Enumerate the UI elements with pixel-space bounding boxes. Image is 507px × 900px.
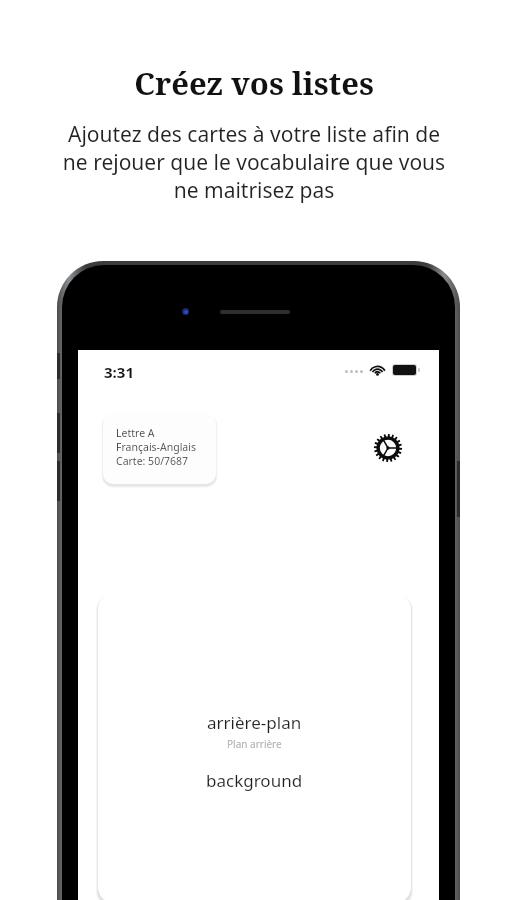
staticText: Ajoutez des cartes à votre liste afin de… xyxy=(54,120,454,204)
staticText: Plan arrière xyxy=(227,737,282,751)
button[interactable]: Lettre A xyxy=(103,413,216,484)
staticText: Créez vos listes xyxy=(134,62,374,104)
button[interactable]: Settings xyxy=(366,426,410,470)
staticText: Carte: 50/7687 xyxy=(116,454,189,468)
staticText: Lettre A xyxy=(116,426,155,440)
staticText: Français-Anglais xyxy=(116,440,196,454)
staticText: 3:31 xyxy=(104,362,134,382)
staticText: arrière-plan xyxy=(207,711,302,734)
staticText: background xyxy=(206,769,303,792)
button[interactable]: arrière-plan xyxy=(98,593,411,900)
